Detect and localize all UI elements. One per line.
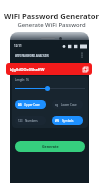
button[interactable]: ag xyxy=(52,100,83,109)
staticText: ag xyxy=(55,103,59,107)
button[interactable]: AG xyxy=(15,100,46,109)
staticText: Generate xyxy=(42,144,59,149)
staticText: 123 xyxy=(18,119,23,123)
staticText: Numbers xyxy=(25,119,38,123)
button[interactable]: kJg8dOOe0ShaffW xyxy=(6,63,92,75)
staticText: Length: 16 xyxy=(15,78,29,82)
staticText: kJg8dOOe0ShaffW xyxy=(10,67,45,72)
button[interactable]: Generate xyxy=(15,141,85,152)
staticText: Generate WiFi Password xyxy=(17,21,86,29)
staticText: WiFi Password Generator xyxy=(4,11,99,21)
button[interactable]: 123 xyxy=(15,116,46,125)
staticText: AG xyxy=(18,103,22,107)
staticText: #% xyxy=(55,119,60,123)
button[interactable]: #% xyxy=(52,116,83,125)
staticText: WIFI PASSWORD ANALYZER xyxy=(15,54,49,57)
staticText: 12:11 xyxy=(14,44,22,48)
staticText: Upper Case xyxy=(24,103,40,107)
button[interactable]: More options xyxy=(79,52,85,58)
staticText: Symbols xyxy=(62,119,74,123)
button[interactable]: Copy password xyxy=(82,66,89,73)
staticText: Lower Case xyxy=(61,103,77,107)
